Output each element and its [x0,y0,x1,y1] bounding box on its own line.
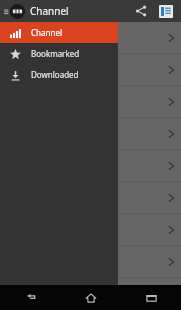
button[interactable]: Show notes [153,0,179,22]
staticText [4,97,168,108]
staticText [4,193,168,204]
staticText [4,129,168,140]
button[interactable] [0,182,181,214]
button[interactable]: ast [0,214,181,246]
staticText: ast [4,225,168,236]
button[interactable]: Home [61,285,121,310]
button[interactable] [0,118,181,150]
staticText: Channel [30,4,129,18]
button[interactable]: odcast) [0,150,181,182]
button[interactable]: Channel [0,22,118,43]
button[interactable]: Share [129,0,153,22]
staticText: Channel [31,27,62,38]
staticText: Bookmarked [31,48,80,59]
button[interactable]: Open navigation drawer [0,0,8,22]
staticText: odcast) [4,161,168,172]
button[interactable]: Downloaded [0,64,118,85]
button[interactable] [0,22,181,54]
button[interactable]: Bookmarked [0,43,118,64]
staticText: Downloaded [31,69,79,80]
staticText [4,33,168,44]
staticText [4,65,168,76]
button[interactable]: ce Official [0,246,181,278]
button[interactable] [0,86,181,118]
staticText: ce Official [4,257,168,268]
button[interactable]: Recent apps [121,285,181,310]
button[interactable]: Back [0,285,61,310]
button[interactable] [0,54,181,86]
